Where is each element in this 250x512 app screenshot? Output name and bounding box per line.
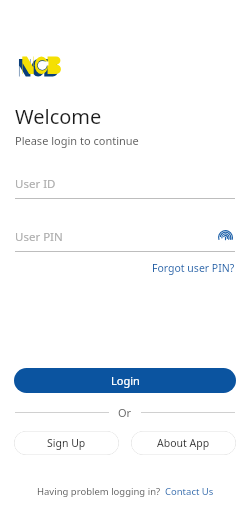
staticText: Welcome [15, 103, 102, 130]
staticText: Sign Up [47, 436, 86, 450]
staticText: Login [111, 373, 140, 388]
staticText: Forgot user PIN? [152, 261, 235, 275]
other: NCB logo [17, 54, 61, 79]
button[interactable]: User PIN [15, 223, 235, 251]
button[interactable]: Contact Us [161, 485, 214, 498]
staticText: Please login to continue [15, 133, 139, 148]
staticText: Contact Us [165, 485, 214, 498]
staticText: Or [118, 405, 132, 420]
button[interactable]: Forgot user PIN? [152, 260, 250, 276]
staticText: Having problem logging in? [37, 485, 161, 498]
staticText: About App [157, 436, 210, 450]
staticText: User PIN [15, 229, 63, 245]
button[interactable]: Sign Up [14, 431, 119, 455]
button[interactable]: Login with fingerprint [215, 227, 235, 247]
button[interactable]: Login [14, 368, 236, 393]
button[interactable]: User ID [15, 170, 235, 199]
staticText: User ID [15, 176, 56, 192]
button[interactable]: About App [131, 431, 236, 455]
